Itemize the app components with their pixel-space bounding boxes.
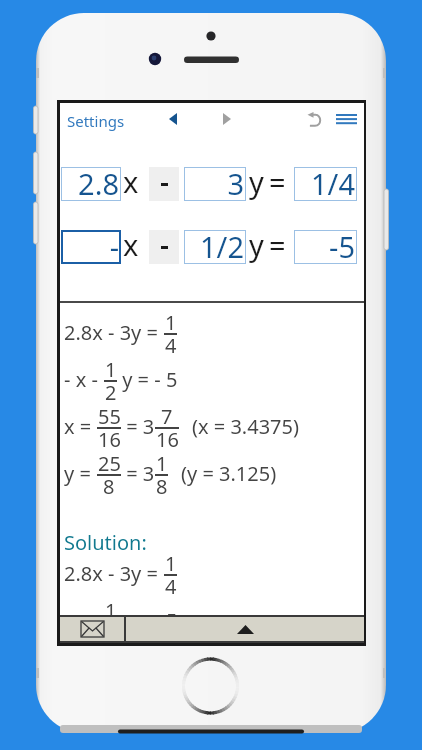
staticText: y = — [64, 460, 97, 487]
staticText: 1 — [105, 356, 117, 383]
button[interactable]: Forward — [213, 105, 241, 133]
staticText: (y = 3.125) — [181, 460, 277, 487]
button[interactable]: 1/4 — [294, 167, 357, 201]
staticText: 2.8x - 3y = — [64, 560, 164, 587]
staticText: 2 — [105, 379, 117, 402]
staticText: 8 — [156, 473, 168, 496]
staticText: (x = 3.4375) — [192, 413, 299, 440]
staticText: = — [269, 162, 286, 201]
staticText: 1/4 — [311, 164, 355, 198]
staticText: 4 — [165, 573, 177, 596]
staticText: y = - 5 — [117, 607, 178, 615]
staticText: 16 — [156, 426, 179, 449]
button[interactable]: Menu — [332, 104, 360, 132]
staticText: Solution: — [64, 529, 147, 556]
staticText: 2.8 — [78, 164, 119, 198]
staticText: y — [249, 162, 264, 201]
staticText: 8 — [103, 473, 115, 496]
button[interactable]: Settings — [67, 111, 125, 131]
button[interactable]: 3 — [184, 167, 246, 201]
button[interactable]: Mail — [60, 617, 124, 641]
staticText: 3 — [227, 164, 244, 198]
staticText: 55 — [98, 403, 121, 430]
button[interactable]: -5 — [294, 230, 357, 264]
staticText: = — [269, 225, 286, 264]
staticText: - x - — [64, 366, 104, 393]
staticText: 1 — [165, 309, 177, 336]
staticText: y = - 5 — [117, 366, 178, 393]
button[interactable] — [149, 230, 179, 264]
staticText: 7 — [161, 403, 173, 430]
staticText: 1 — [156, 450, 168, 477]
staticText: x — [123, 225, 139, 264]
staticText: 25 — [98, 450, 121, 477]
staticText: x = — [64, 413, 97, 440]
staticText: = 3 — [121, 413, 155, 440]
staticText: = 3 — [121, 460, 155, 487]
button[interactable]: Expand — [126, 617, 364, 641]
staticText: 1/2 — [200, 227, 244, 261]
button[interactable] — [149, 167, 179, 201]
staticText: 1 — [105, 597, 117, 615]
staticText: x — [123, 162, 139, 201]
button[interactable]: 2.8 — [61, 167, 121, 201]
button[interactable]: - — [61, 230, 121, 264]
staticText: y — [249, 225, 264, 264]
button[interactable]: Undo — [299, 105, 327, 133]
staticText: 4 — [165, 332, 177, 355]
staticText: 2.8x - 3y = — [64, 319, 164, 346]
staticText: 1 — [165, 550, 177, 577]
button[interactable]: 1/2 — [184, 230, 246, 264]
staticText: - — [109, 227, 119, 261]
button[interactable]: Back — [159, 105, 187, 133]
staticText: -5 — [329, 227, 355, 261]
staticText: 16 — [98, 426, 121, 449]
